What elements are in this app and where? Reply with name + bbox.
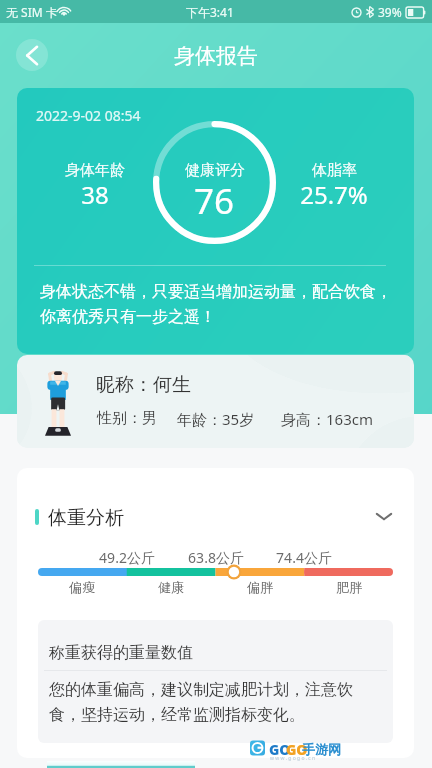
staticText: 偏瘦: [69, 579, 95, 595]
staticText: 称重获得的重量数值: [49, 643, 193, 663]
staticText: 体脂率: [312, 161, 357, 180]
staticText: 你离优秀只有一步之遥！: [40, 307, 216, 327]
staticText: 肥胖: [336, 579, 362, 595]
staticText: 身体状态不错，只要适当增加运动量，配合饮食，: [40, 282, 392, 302]
staticText: 健康: [158, 579, 184, 595]
staticText: 健康评分: [185, 161, 245, 180]
staticText: 63.8公斤: [188, 548, 244, 567]
staticText: 25.7%: [300, 178, 368, 211]
staticText: 身高：163cm: [281, 409, 373, 429]
staticText: 49.2公斤: [99, 548, 155, 567]
button[interactable]: More: [47, 761, 195, 768]
staticText: 食，坚持运动，经常监测指标变化。: [49, 705, 305, 725]
staticText: 38: [81, 178, 109, 211]
staticText: 下午3:41: [186, 4, 234, 20]
staticText: 74.4公斤: [276, 548, 332, 567]
staticText: 手游网: [302, 741, 341, 757]
staticText: 体重分析: [48, 506, 124, 530]
staticText: 身体报告: [174, 43, 258, 69]
staticText: w w w . g o g o . c n: [270, 755, 316, 762]
staticText: 身体年龄: [65, 161, 125, 180]
button[interactable]: Back: [16, 39, 48, 71]
staticText: 偏胖: [247, 579, 273, 595]
staticText: 性别：男: [97, 409, 157, 428]
staticText: 昵称：何生: [96, 373, 191, 397]
staticText: GO: [269, 740, 291, 759]
staticText: 2022-9-02 08:54: [36, 106, 141, 125]
staticText: 年龄：35岁: [177, 409, 255, 429]
staticText: 无 SIM 卡: [6, 4, 58, 20]
staticText: 39%: [378, 4, 402, 20]
staticText: 76: [194, 177, 235, 225]
button[interactable]: Collapse section: [370, 502, 398, 530]
staticText: GO: [286, 740, 308, 759]
button[interactable]: 昵称：何生: [17, 355, 414, 448]
staticText: 您的体重偏高，建议制定减肥计划，注意饮: [49, 680, 353, 700]
